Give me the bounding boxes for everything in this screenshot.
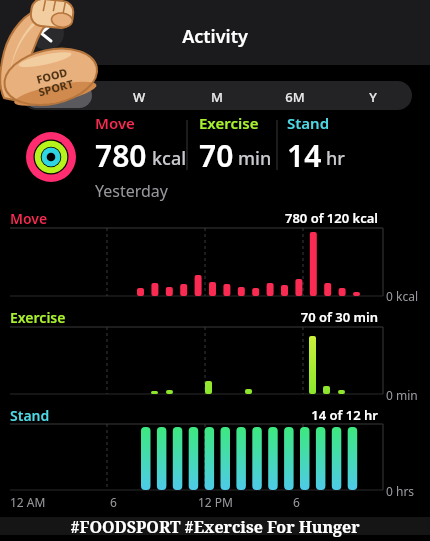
staticText: 70	[199, 135, 234, 176]
staticText: 780	[95, 135, 147, 176]
staticText: hr	[326, 146, 345, 171]
staticText: Y	[334, 88, 412, 106]
staticText: 0 min	[386, 387, 418, 403]
staticText: 0 kcal	[386, 288, 418, 304]
staticText: Stand	[10, 406, 50, 425]
staticText: Move	[10, 209, 48, 228]
staticText: 70 of 30 min	[178, 308, 378, 326]
staticText: 6	[293, 494, 300, 510]
staticText: W	[100, 88, 178, 106]
staticText: Move	[95, 113, 135, 133]
staticText: 12 AM	[10, 494, 46, 510]
staticText: Stand	[287, 113, 330, 133]
staticText: #FOODSPORT #Exercise For Hunger	[0, 516, 430, 538]
staticText: 6M	[256, 88, 334, 106]
staticText: Exercise	[10, 308, 66, 327]
staticText: 6	[110, 494, 117, 510]
staticText: 0 hrs	[386, 483, 415, 499]
staticText: SPORT	[37, 76, 75, 99]
staticText: 780 of 120 kcal	[178, 209, 378, 227]
staticText: min	[238, 146, 272, 171]
staticText: Activity	[0, 24, 430, 49]
staticText: 14 of 12 hr	[178, 406, 378, 424]
staticText: kcal	[152, 146, 187, 171]
staticText: Exercise	[199, 113, 259, 133]
staticText: M	[178, 88, 256, 106]
staticText: 14	[287, 135, 322, 176]
staticText: FOOD	[35, 64, 69, 87]
staticText: 12 PM	[198, 494, 233, 510]
staticText: Yesterday	[95, 180, 169, 202]
